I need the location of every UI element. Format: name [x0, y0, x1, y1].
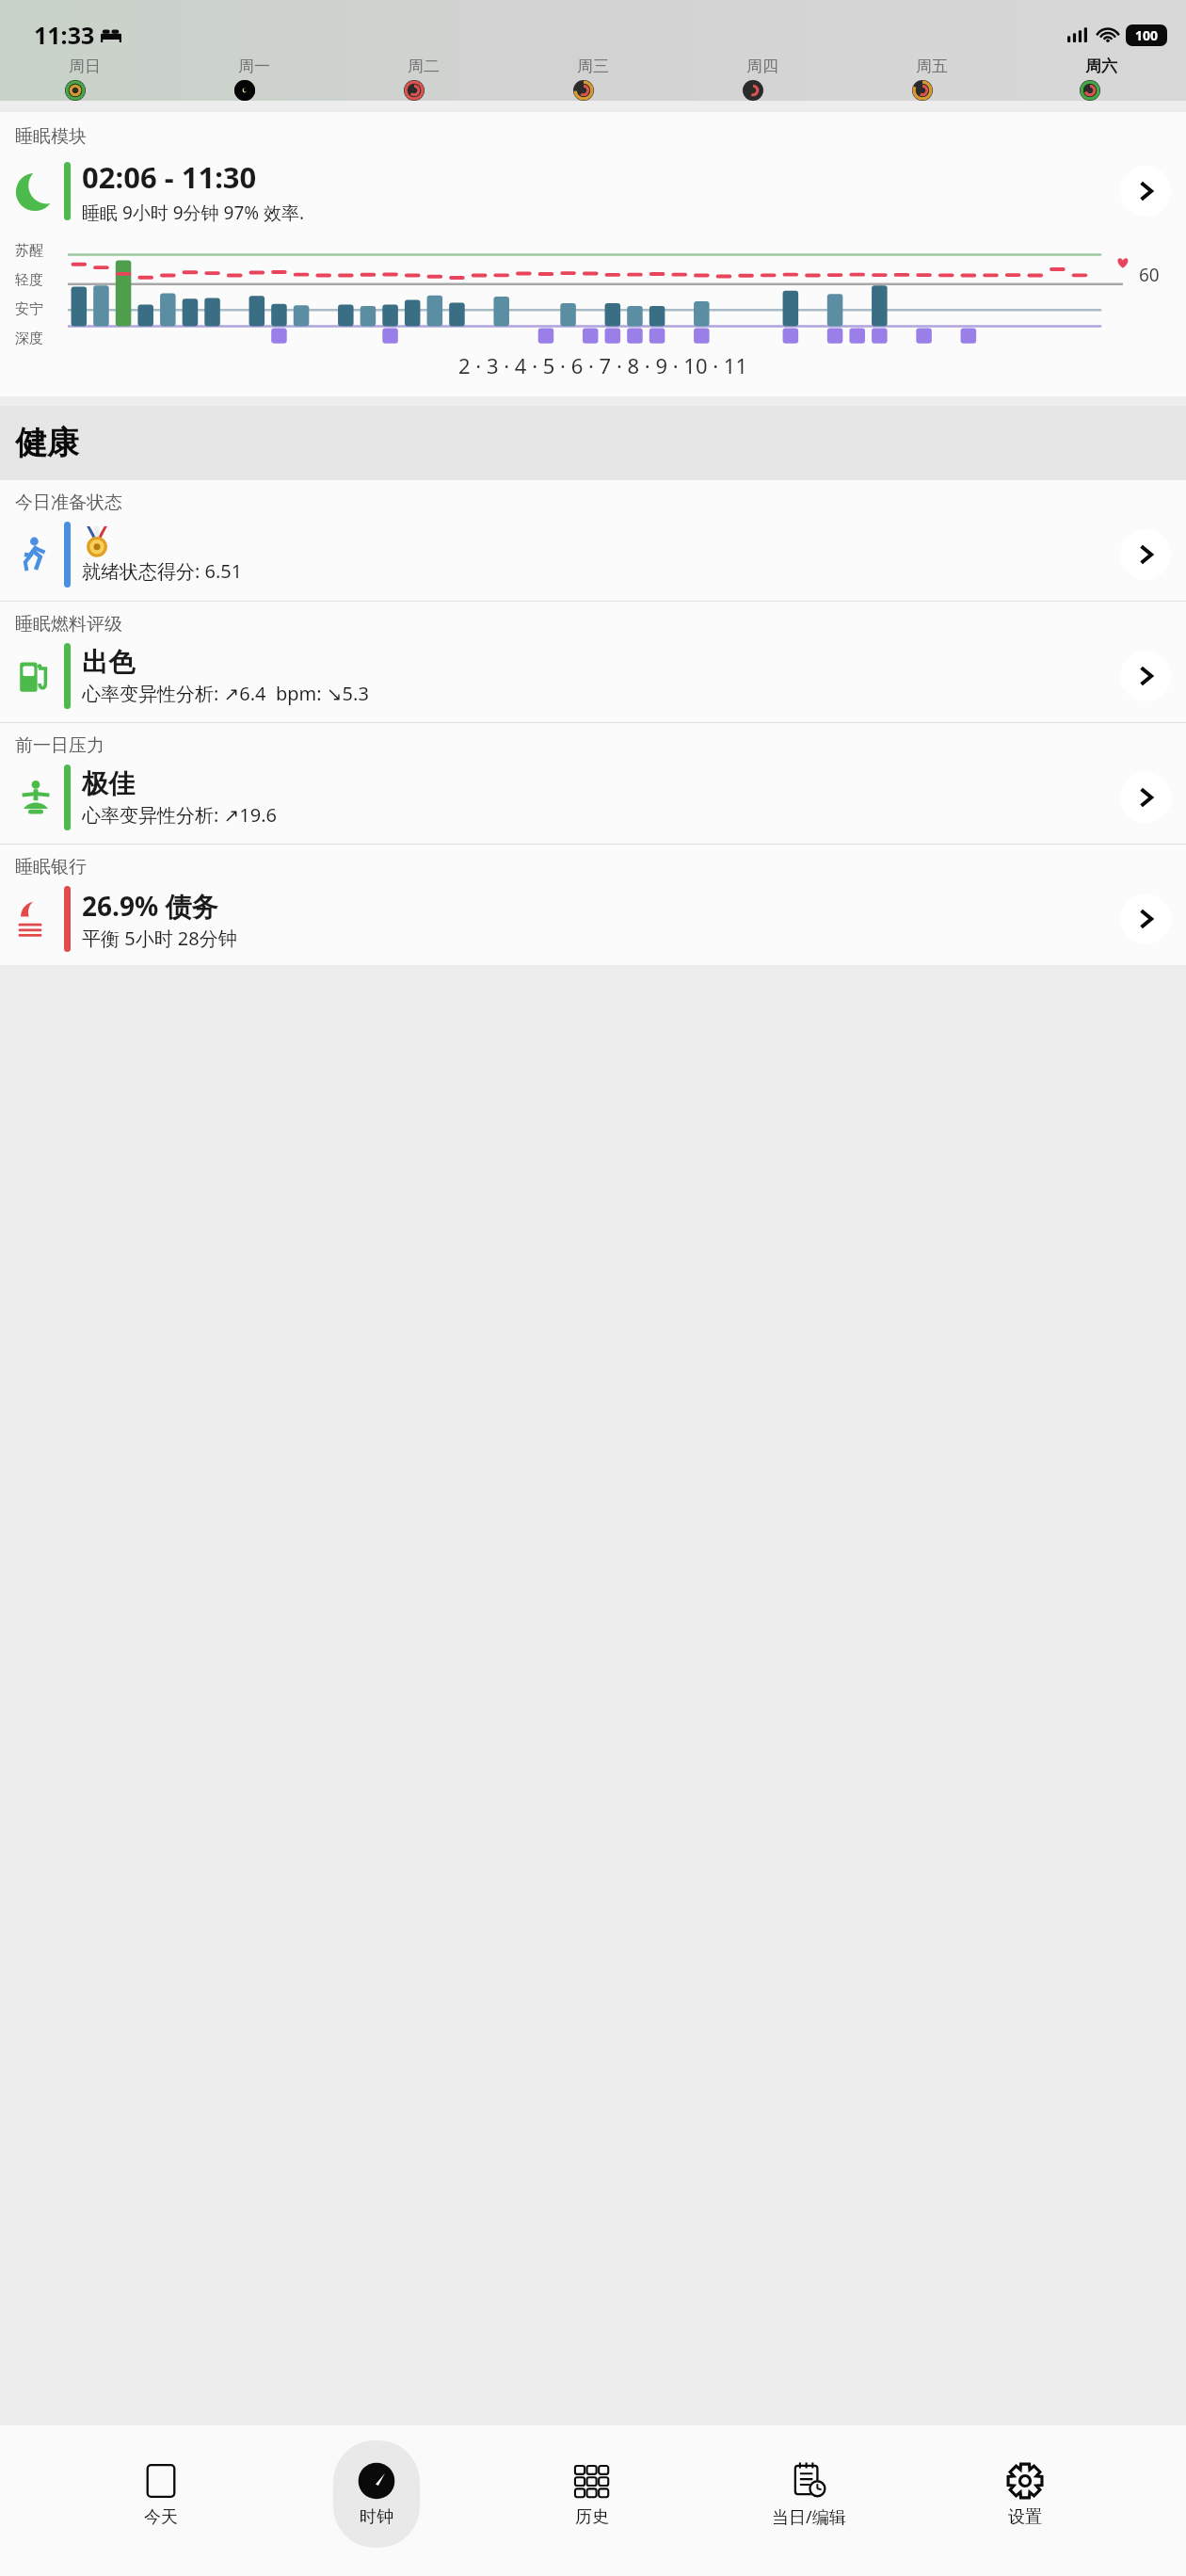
button[interactable]: 详情 — [1120, 894, 1171, 944]
button[interactable]: 详情 — [1120, 772, 1171, 823]
button[interactable]: 前一日压力 — [0, 723, 1186, 844]
staticText: 02:06 - 11:30 — [82, 157, 257, 197]
button[interactable] — [169, 80, 339, 101]
staticText: 今天 — [144, 2506, 178, 2528]
staticText: 周五 — [916, 56, 948, 76]
button[interactable]: 详情 — [1120, 529, 1171, 580]
staticText: 60 — [1139, 263, 1160, 287]
button[interactable] — [1017, 80, 1186, 101]
button[interactable]: 详情 — [1120, 166, 1171, 217]
button[interactable]: 当日/编辑 — [768, 2440, 850, 2548]
staticText: 今日准备状态 — [15, 491, 122, 514]
button[interactable]: 历史 — [569, 2440, 616, 2548]
staticText: 睡眠 9小时 9分钟 97% 效率. — [82, 201, 305, 225]
staticText: 前一日压力 — [15, 734, 104, 757]
staticText: 睡眠银行 — [15, 856, 87, 878]
staticText: 睡眠模块 — [15, 125, 87, 148]
staticText: 历史 — [575, 2506, 609, 2528]
staticText: 26.9% 债务 — [82, 888, 218, 924]
staticText: 平衡 5小时 28分钟 — [82, 926, 237, 951]
button[interactable] — [0, 80, 169, 101]
button[interactable] — [678, 80, 847, 101]
staticText: 周六 — [1085, 56, 1117, 76]
staticText: 极佳 — [82, 767, 135, 800]
button[interactable]: 设置 — [1002, 2440, 1049, 2548]
staticText: 周二 — [408, 56, 440, 76]
staticText: 安宁 — [15, 300, 43, 318]
button[interactable]: 详情 — [1120, 651, 1171, 701]
button[interactable] — [508, 80, 678, 101]
staticText: 轻度 — [15, 271, 43, 289]
staticText: 就绪状态得分: 6.51 — [82, 558, 243, 584]
staticText: 时钟 — [360, 2506, 393, 2528]
staticText: 周日 — [69, 56, 101, 76]
staticText: 周三 — [577, 56, 609, 76]
staticText: 周四 — [746, 56, 778, 76]
staticText: 设置 — [1008, 2506, 1042, 2528]
staticText: 深度 — [15, 330, 43, 347]
staticText: 苏醒 — [15, 242, 43, 260]
staticText: 100 — [1135, 26, 1159, 44]
staticText: 健康 — [15, 423, 79, 463]
button[interactable] — [339, 80, 508, 101]
button[interactable]: 睡眠燃料评级 — [0, 602, 1186, 722]
staticText: 2 · 3 · 4 · 5 · 6 · 7 · 8 · 9 · 10 · 11 — [458, 351, 748, 379]
staticText: 周一 — [238, 56, 270, 76]
button[interactable] — [847, 80, 1017, 101]
button[interactable]: 今天 — [137, 2440, 184, 2548]
button[interactable]: 时钟 — [333, 2440, 420, 2548]
staticText: 11:33 — [34, 19, 95, 51]
staticText: 心率变异性分析: ↗19.6 — [82, 802, 277, 828]
staticText: 当日/编辑 — [772, 2505, 846, 2529]
staticText: 睡眠燃料评级 — [15, 613, 122, 636]
staticText: 出色 — [82, 646, 135, 679]
button[interactable]: 今日准备状态 — [0, 480, 1186, 601]
button[interactable]: 睡眠模块 — [0, 112, 1186, 396]
staticText: 心率变异性分析: ↗6.4 bpm: ↘5.3 — [82, 681, 369, 706]
button[interactable]: 睡眠银行 — [0, 845, 1186, 965]
